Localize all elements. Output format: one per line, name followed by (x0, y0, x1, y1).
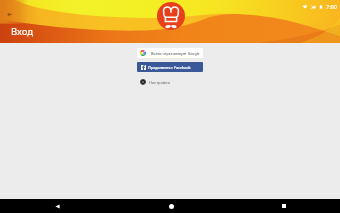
staticText: 7:00 (326, 3, 337, 10)
button[interactable]: Home (164, 199, 178, 213)
button[interactable]: Войти через аккаунт Google (137, 48, 203, 58)
button[interactable]: Продолжить с Facebook (137, 62, 203, 72)
staticText: Продолжить с Facebook (148, 65, 191, 70)
button[interactable]: Recent apps (277, 199, 291, 213)
button[interactable]: Back (3, 8, 16, 21)
staticText: Вход (11, 25, 34, 38)
staticText: Настройки (149, 80, 170, 85)
button[interactable]: Настройки (137, 76, 203, 87)
button[interactable]: Back (50, 199, 64, 213)
staticText: Войти через аккаунт Google (151, 51, 200, 56)
